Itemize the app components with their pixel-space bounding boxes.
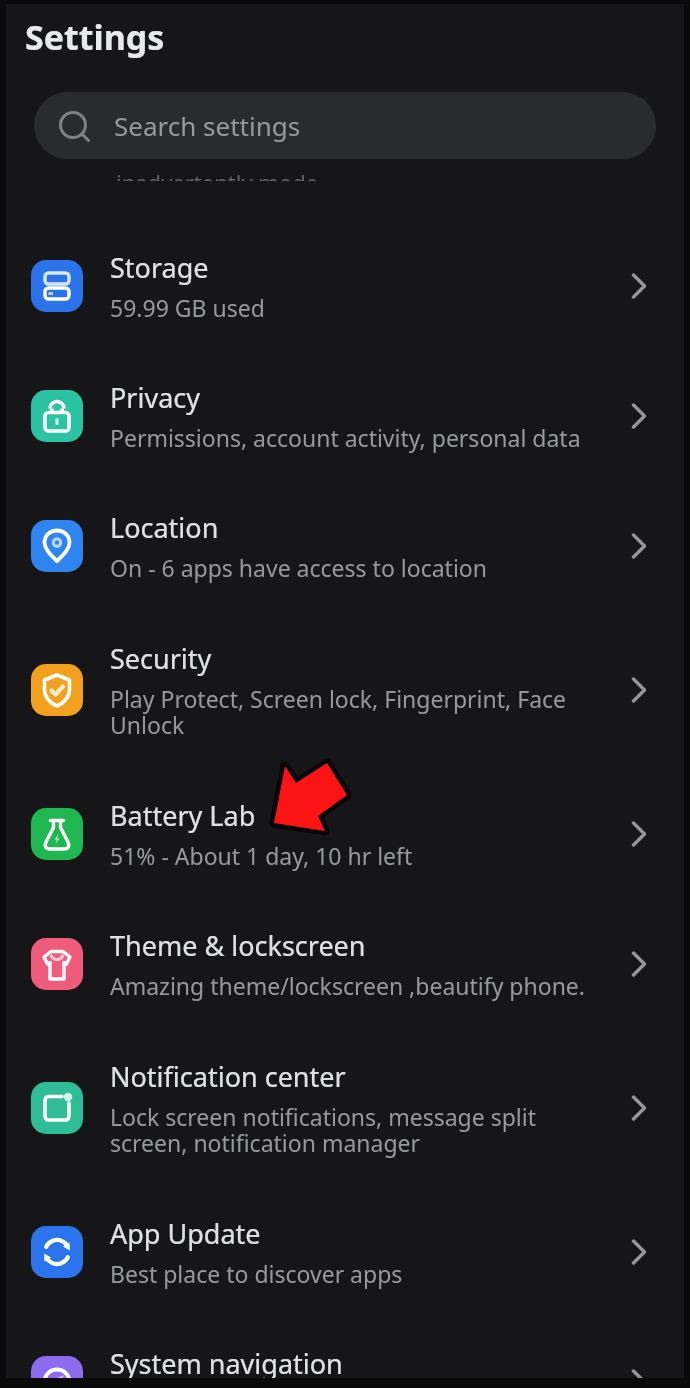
button[interactable]: Security xyxy=(6,611,684,769)
staticText: On - 6 apps have access to location xyxy=(110,552,487,583)
button[interactable]: Notification center xyxy=(6,1029,684,1187)
staticText: Theme & lockscreen xyxy=(110,927,366,964)
button[interactable]: Privacy xyxy=(6,351,684,481)
button[interactable]: App Update xyxy=(6,1187,684,1317)
staticText: Notification center xyxy=(110,1058,346,1095)
staticText: Privacy xyxy=(110,379,201,416)
button[interactable]: Location xyxy=(6,481,684,611)
staticText: Location xyxy=(110,509,219,546)
staticText: App Update xyxy=(110,1215,261,1252)
button[interactable]: Storage xyxy=(6,221,684,351)
button[interactable]: Battery Lab xyxy=(6,769,684,899)
button[interactable]: Theme & lockscreen xyxy=(6,899,684,1029)
staticText: Battery Lab xyxy=(110,797,256,834)
staticText: Best place to discover apps xyxy=(110,1258,403,1289)
staticText: Storage xyxy=(110,249,209,286)
staticText: 51% - About 1 day, 10 hr left xyxy=(110,840,413,871)
staticText: inadvertently mode xyxy=(116,175,319,181)
staticText: Security xyxy=(110,640,212,677)
staticText: Settings xyxy=(25,14,165,60)
staticText: System navigation xyxy=(110,1345,343,1378)
staticText: Play Protect, Screen lock, Fingerprint, … xyxy=(110,683,567,741)
staticText: Lock screen notifications, message split… xyxy=(110,1101,537,1159)
staticText: Permissions, account activity, personal … xyxy=(110,422,581,453)
button[interactable]: System navigation xyxy=(6,1317,684,1378)
staticText: Amazing theme/lockscreen ,beautify phone… xyxy=(110,970,585,1001)
button[interactable]: Search settings xyxy=(34,92,656,159)
staticText: Search settings xyxy=(114,108,301,143)
staticText: 59.99 GB used xyxy=(110,292,265,323)
